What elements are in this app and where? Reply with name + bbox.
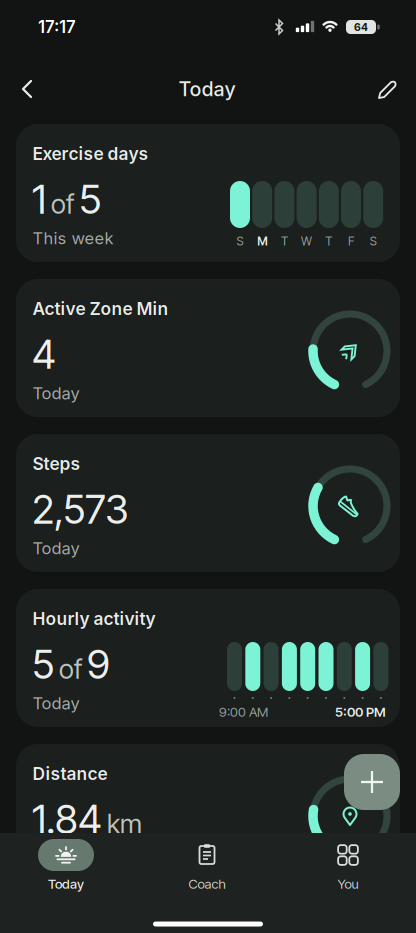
staticText: S (370, 234, 377, 248)
staticText: 5 (79, 176, 101, 223)
staticText: T (325, 234, 332, 248)
staticText: Today (32, 538, 79, 558)
button[interactable]: Active Zone Min (16, 279, 400, 417)
staticText: Today (48, 876, 84, 892)
staticText: Hourly activity (32, 608, 155, 629)
staticText: 17:17 (38, 17, 76, 37)
staticText: 9 (87, 641, 110, 688)
staticText: F (348, 234, 354, 248)
staticText: 9:00 AM (219, 704, 268, 720)
staticText: Active Zone Min (32, 298, 168, 319)
button[interactable] (293, 833, 403, 877)
button[interactable] (344, 754, 400, 810)
staticText: of (51, 188, 74, 220)
staticText: S (236, 234, 243, 248)
button[interactable] (17, 76, 43, 102)
button[interactable]: Distance (16, 744, 400, 882)
staticText: 1 (32, 176, 46, 223)
staticText: 64 (354, 21, 368, 33)
staticText: Steps (32, 453, 80, 474)
staticText: km (107, 808, 142, 840)
staticText: Today (178, 77, 235, 101)
staticText: 5 (32, 641, 54, 688)
button[interactable] (377, 78, 399, 100)
staticText: T (281, 234, 288, 248)
staticText: Coach (188, 876, 225, 892)
button[interactable]: Steps (16, 434, 400, 572)
staticText: Exercise days (32, 143, 148, 164)
button[interactable] (152, 833, 262, 877)
staticText: 5:00 PM (335, 704, 386, 720)
button[interactable]: Hourly activity (16, 589, 400, 727)
button[interactable] (11, 833, 121, 877)
staticText: Today (32, 693, 79, 713)
staticText: 4 (32, 331, 56, 378)
staticText: W (301, 234, 312, 248)
staticText: 1.84 (32, 796, 102, 843)
button[interactable]: Exercise days (16, 124, 400, 262)
staticText: Distance (32, 763, 107, 784)
staticText: You (337, 876, 358, 892)
staticText: of (59, 653, 82, 685)
staticText: This week (32, 228, 113, 248)
staticText: 2,573 (32, 486, 129, 533)
staticText: Today (32, 383, 79, 403)
staticText: M (257, 234, 267, 248)
